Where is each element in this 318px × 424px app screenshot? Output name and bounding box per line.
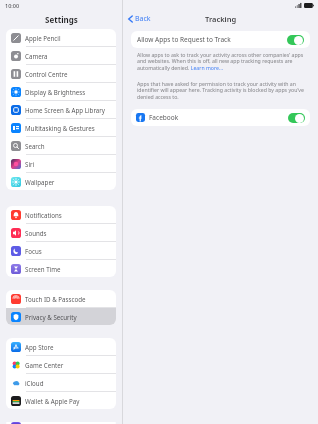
button[interactable]: Facebook [131,109,310,126]
button[interactable]: Apple Pencil [6,29,116,46]
button[interactable]: Privacy & Security [6,308,116,325]
button[interactable]: Focus [6,242,116,259]
button[interactable]: Back [123,12,155,26]
button[interactable]: iCloud [6,374,116,391]
staticText: Settings [45,14,78,25]
button[interactable]: Camera [6,47,116,64]
staticText: Notifications [25,211,62,219]
button[interactable]: Control Centre [6,65,116,82]
staticText: Allow Apps to Request to Track [137,35,231,44]
button[interactable]: Toggle [287,35,304,45]
button[interactable]: Wallet & Apple Pay [6,392,116,409]
staticText: Multitasking & Gestures [25,124,95,132]
staticText: iCloud [25,379,44,387]
button[interactable]: Apps [6,422,116,424]
staticText: Siri [25,160,35,168]
button[interactable]: Screen Time [6,260,116,277]
staticText: Home Screen & App Library [25,106,105,114]
staticText: Display & Brightness [25,88,86,96]
button[interactable]: Allow Apps to Request to Track [131,31,310,48]
staticText: Sounds [25,229,47,237]
staticText: Allow apps to ask to track your activity… [137,51,304,72]
staticText: 10:00 [5,2,20,9]
staticText: Game Center [25,361,64,369]
button[interactable]: Search [6,137,116,154]
staticText: Search [25,142,45,150]
button[interactable]: Display & Brightness [6,83,116,100]
staticText: Control Centre [25,70,68,78]
button[interactable]: Game Center [6,356,116,373]
button[interactable]: Wallpaper [6,173,116,190]
staticText: Apple Pencil [25,34,61,42]
button[interactable]: Sounds [6,224,116,241]
staticText: Camera [25,52,48,60]
staticText: Focus [25,247,42,255]
staticText: Wallpaper [25,178,55,186]
button[interactable]: Touch ID & Passcode [6,290,116,307]
staticText: Facebook [149,113,179,122]
staticText: App Store [25,343,54,351]
staticText: Privacy & Security [25,313,77,321]
staticText: Back [135,14,151,24]
button[interactable]: Toggle [288,113,305,123]
button[interactable]: Notifications [6,206,116,223]
button[interactable]: Home Screen & App Library [6,101,116,118]
staticText: Touch ID & Passcode [25,295,86,303]
button[interactable]: Multitasking & Gestures [6,119,116,136]
button[interactable]: App Store [6,338,116,355]
button[interactable]: Siri [6,155,116,172]
staticText: Wallet & Apple Pay [25,397,80,405]
staticText: Apps that have asked for permission to t… [137,80,304,101]
staticText: Screen Time [25,265,61,273]
staticText: Tracking [205,14,237,24]
